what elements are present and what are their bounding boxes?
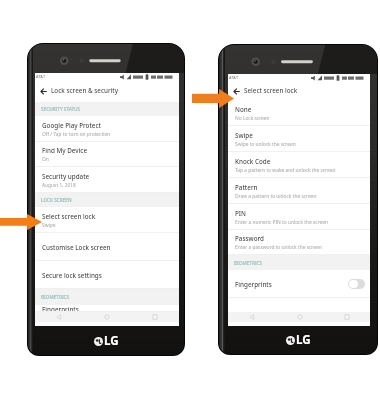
staticText: Tap a pattern to wake and unlock the scr… [235, 167, 336, 174]
staticText: BIOMETRICS [41, 294, 70, 300]
button[interactable]: Recent apps [131, 312, 179, 322]
staticText: Draw a pattern to unlock the screen [235, 193, 317, 200]
staticText: LOCK SCREEN [41, 197, 72, 203]
button[interactable]: Back [228, 312, 276, 322]
staticText: Customise Lock screen [42, 243, 111, 252]
staticText: Password [235, 234, 264, 243]
button[interactable]: Google Play Protect [35, 116, 179, 142]
staticText: Select screen lock [244, 86, 298, 95]
button[interactable]: Back [35, 312, 83, 322]
button[interactable]: Fingerprints [35, 305, 179, 312]
staticText: Select screen lock [42, 212, 96, 221]
button[interactable]: Password [228, 230, 370, 255]
staticText: LG [104, 333, 119, 349]
staticText: Fingerprints [42, 305, 79, 312]
staticText: PIN [235, 209, 246, 218]
button[interactable]: Pattern [228, 178, 370, 204]
staticText: Swipe [42, 222, 56, 229]
staticText: Enter a password to unlock the screen [235, 244, 322, 251]
button[interactable]: Navigate up [37, 85, 49, 97]
staticText: Enter a numeric PIN to unlock the screen [235, 219, 329, 226]
button[interactable]: Fingerprints [228, 270, 370, 298]
staticText: Find My Device [42, 146, 88, 155]
staticText: AT&T [36, 74, 46, 79]
staticText: August 1, 2018 [42, 182, 76, 189]
button[interactable]: None [228, 100, 370, 126]
staticText: Knock Code [235, 157, 271, 166]
staticText: Lock screen & security [51, 86, 119, 95]
staticText: Google Play Protect [42, 121, 101, 130]
button[interactable]: Knock Code [228, 152, 370, 178]
button[interactable]: Find My Device [35, 142, 179, 167]
staticText: SECURITY STATUS [41, 106, 81, 112]
button[interactable]: PIN [228, 204, 370, 230]
button[interactable]: Select screen lock [35, 207, 179, 233]
staticText: Swipe [235, 131, 253, 140]
staticText: LG [296, 332, 311, 348]
staticText: No Lock screen [235, 115, 270, 122]
button[interactable]: Fingerprints toggle [348, 279, 365, 289]
button[interactable]: Customise Lock screen [35, 233, 179, 261]
staticText: Off / Tap to turn on protection [42, 131, 111, 138]
staticText: On [42, 156, 49, 163]
button[interactable]: Secure lock settings [35, 261, 179, 289]
button[interactable]: Security update [35, 167, 179, 193]
button[interactable]: Navigate up [230, 85, 242, 97]
staticText: Security update [42, 172, 90, 181]
staticText: AT&T [229, 75, 239, 80]
staticText: Pattern [235, 183, 258, 192]
staticText: Secure lock settings [42, 271, 102, 280]
button[interactable]: Recent apps [323, 312, 370, 322]
button[interactable]: Swipe [228, 126, 370, 152]
staticText: Fingerprints [235, 280, 272, 289]
staticText: BIOMETRICS [234, 260, 263, 266]
staticText: None [235, 105, 252, 114]
staticText: Swipe to unlock the screen [235, 141, 296, 148]
